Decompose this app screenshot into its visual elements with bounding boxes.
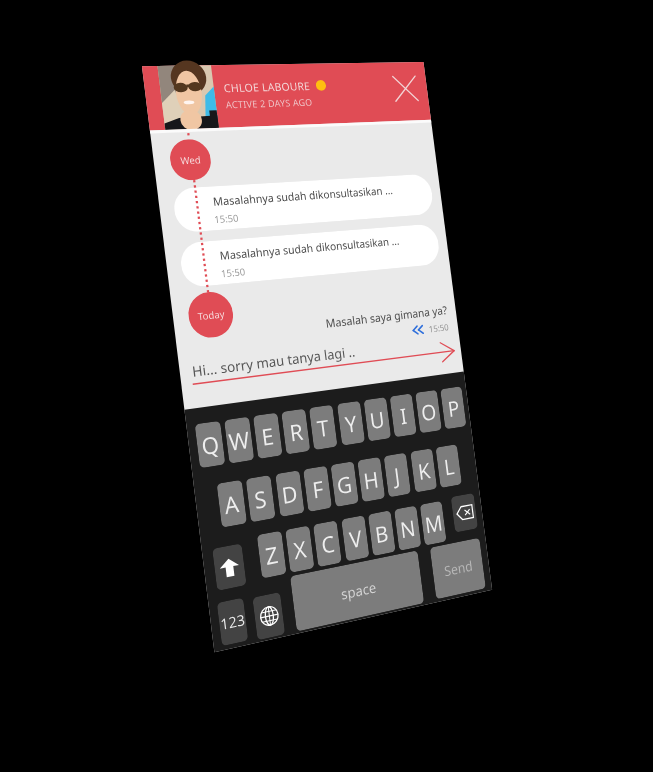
button[interactable]: P bbox=[440, 386, 467, 429]
button[interactable]: Q bbox=[195, 421, 225, 468]
button[interactable]: O bbox=[415, 390, 442, 433]
staticText: N bbox=[398, 512, 417, 544]
button[interactable]: Change language bbox=[252, 592, 285, 640]
button[interactable]: W bbox=[224, 417, 254, 464]
staticText: Masalahnya sudah dikonsultasikan ... bbox=[212, 182, 394, 209]
staticText: Y bbox=[343, 407, 359, 439]
button[interactable]: Wed bbox=[168, 138, 213, 181]
button[interactable]: N bbox=[394, 505, 421, 551]
button[interactable]: X bbox=[285, 525, 314, 573]
staticText: ACTIVE 2 DAYS AGO bbox=[225, 96, 313, 111]
button[interactable]: Close bbox=[388, 71, 423, 106]
staticText: CHLOE LABOURE bbox=[223, 78, 311, 95]
button[interactable]: Shift bbox=[212, 543, 247, 591]
button[interactable]: space bbox=[290, 550, 424, 632]
button[interactable]: E bbox=[253, 412, 283, 459]
staticText: V bbox=[347, 522, 364, 554]
button[interactable]: H bbox=[357, 457, 385, 502]
staticText: Masalah saya gimana ya? bbox=[325, 303, 448, 332]
staticText: Hi... sorry mau tanya lagi .. bbox=[191, 342, 357, 381]
button[interactable]: U bbox=[363, 397, 391, 442]
staticText: 15:50 bbox=[213, 211, 240, 226]
staticText: L bbox=[442, 451, 456, 481]
staticText: D bbox=[280, 477, 300, 510]
staticText: H bbox=[362, 463, 381, 496]
button[interactable]: S bbox=[246, 475, 276, 522]
staticText: Masalahnya sudah dikonsultasikan ... bbox=[219, 233, 401, 263]
button[interactable]: T bbox=[309, 405, 338, 450]
button[interactable]: Masalahnya sudah dikonsultasikan ... bbox=[178, 223, 441, 288]
staticText: R bbox=[288, 415, 305, 448]
staticText: 15:50 bbox=[220, 265, 247, 280]
staticText: Z bbox=[263, 538, 280, 571]
button[interactable]: V bbox=[341, 515, 370, 562]
staticText: K bbox=[416, 455, 432, 486]
button[interactable]: A bbox=[216, 480, 247, 528]
staticText: F bbox=[310, 473, 326, 505]
button[interactable]: M bbox=[420, 501, 447, 546]
button[interactable]: J bbox=[383, 453, 411, 497]
staticText: 123 bbox=[219, 609, 247, 634]
staticText: J bbox=[392, 460, 402, 490]
button[interactable]: Backspace bbox=[451, 493, 478, 533]
staticText: P bbox=[446, 392, 462, 423]
button[interactable]: K bbox=[410, 448, 437, 493]
staticText: E bbox=[260, 419, 276, 452]
button[interactable]: Y bbox=[337, 401, 365, 446]
button[interactable]: Today bbox=[186, 290, 236, 340]
staticText: X bbox=[292, 533, 308, 566]
staticText: space bbox=[340, 577, 377, 604]
staticText: 15:50 bbox=[428, 321, 450, 334]
staticText: W bbox=[227, 423, 252, 457]
staticText: Today bbox=[197, 307, 226, 323]
button[interactable]: 123 bbox=[217, 597, 248, 646]
button[interactable]: Send bbox=[430, 538, 486, 599]
button[interactable]: F bbox=[303, 466, 332, 512]
staticText: C bbox=[319, 527, 336, 560]
staticText: Wed bbox=[180, 153, 202, 167]
button[interactable]: R bbox=[281, 409, 310, 455]
staticText: O bbox=[419, 396, 439, 427]
button[interactable]: B bbox=[368, 510, 396, 556]
button[interactable]: C bbox=[313, 520, 342, 567]
button[interactable]: I bbox=[389, 393, 417, 437]
staticText: I bbox=[398, 400, 409, 430]
staticText: B bbox=[373, 517, 390, 549]
button[interactable]: Z bbox=[257, 531, 287, 579]
staticText: T bbox=[315, 411, 331, 443]
staticText: M bbox=[423, 507, 444, 539]
staticText: Send bbox=[443, 556, 474, 580]
staticText: S bbox=[252, 482, 269, 515]
staticText: U bbox=[368, 403, 387, 435]
staticText: Q bbox=[199, 427, 222, 461]
button[interactable]: L bbox=[435, 444, 462, 488]
button[interactable]: D bbox=[275, 470, 305, 517]
button[interactable]: Masalahnya sudah dikonsultasikan ... bbox=[172, 174, 435, 233]
button[interactable]: G bbox=[330, 461, 359, 507]
staticText: A bbox=[222, 487, 241, 520]
staticText: G bbox=[335, 468, 354, 500]
